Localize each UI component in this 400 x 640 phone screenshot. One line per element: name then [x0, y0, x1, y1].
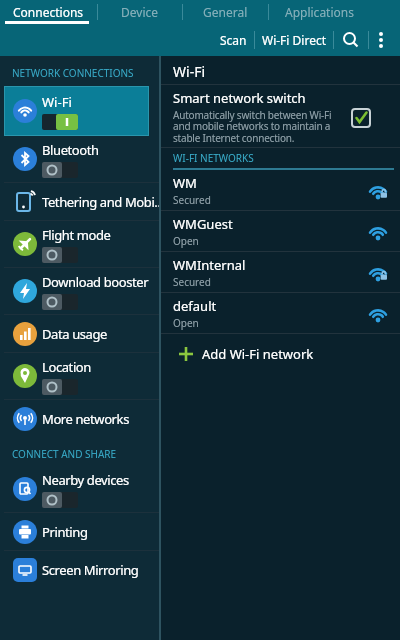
- button[interactable]: Smart network switch: [161, 85, 400, 145]
- staticText: Wi-Fi: [42, 93, 72, 111]
- button[interactable]: [334, 24, 368, 56]
- button[interactable]: General: [183, 0, 268, 24]
- staticText: Secured: [173, 275, 211, 289]
- staticText: WI-FI NETWORKS: [173, 151, 254, 165]
- staticText: WMInternal: [173, 256, 246, 274]
- staticText: WM: [173, 174, 197, 192]
- button[interactable]: WMGuest: [161, 211, 400, 251]
- staticText: General: [203, 4, 248, 20]
- staticText: WMGuest: [173, 215, 233, 233]
- staticText: More networks: [42, 410, 129, 428]
- button[interactable]: Data usage: [0, 315, 159, 352]
- staticText: Bluetooth: [42, 141, 99, 159]
- button[interactable]: More networks: [0, 400, 159, 437]
- button[interactable]: [369, 24, 400, 56]
- button[interactable]: Nearby devices: [0, 466, 159, 512]
- staticText: Nearby devices: [42, 471, 129, 489]
- button[interactable]: Scan: [210, 24, 254, 56]
- staticText: Scan: [220, 32, 247, 48]
- button[interactable]: WMInternal: [161, 252, 400, 292]
- staticText: Wi-Fi: [173, 62, 206, 81]
- staticText: Automatically switch between Wi-Fi and m…: [173, 108, 344, 145]
- staticText: Applications: [285, 4, 354, 20]
- staticText: Printing: [42, 523, 88, 541]
- button[interactable]: default: [161, 293, 400, 333]
- staticText: Data usage: [42, 325, 108, 343]
- staticText: Download booster: [42, 273, 149, 291]
- button[interactable]: Connections: [0, 0, 97, 24]
- button[interactable]: WM: [161, 170, 400, 210]
- button[interactable]: Applications: [269, 0, 369, 24]
- staticText: Tethering and Mobi..: [42, 193, 159, 211]
- button[interactable]: Bluetooth: [0, 136, 159, 182]
- button[interactable]: Flight mode: [0, 221, 159, 267]
- staticText: Open: [173, 316, 199, 330]
- button[interactable]: Tethering and Mobi..: [0, 183, 159, 220]
- button[interactable]: Wi-Fi Direct: [255, 24, 333, 56]
- staticText: Open: [173, 234, 199, 248]
- button[interactable]: Device: [98, 0, 182, 24]
- staticText: Wi-Fi Direct: [262, 32, 326, 48]
- staticText: NETWORK CONNECTIONS: [12, 66, 134, 80]
- staticText: Flight mode: [42, 226, 111, 244]
- button[interactable]: Download booster: [0, 268, 159, 314]
- button[interactable]: Add Wi-Fi network: [161, 334, 400, 374]
- staticText: Connections: [13, 4, 84, 20]
- button[interactable]: Location: [0, 353, 159, 399]
- staticText: Add Wi-Fi network: [202, 345, 314, 363]
- button[interactable]: Wi-Fi: [4, 86, 149, 136]
- staticText: CONNECT AND SHARE: [12, 447, 117, 461]
- staticText: Smart network switch: [173, 89, 306, 107]
- staticText: Location: [42, 358, 91, 376]
- staticText: Secured: [173, 193, 211, 207]
- staticText: default: [173, 297, 217, 315]
- button[interactable]: Screen Mirroring: [0, 551, 159, 588]
- button[interactable]: Printing: [0, 513, 159, 550]
- staticText: Device: [121, 4, 159, 20]
- staticText: Screen Mirroring: [42, 561, 139, 579]
